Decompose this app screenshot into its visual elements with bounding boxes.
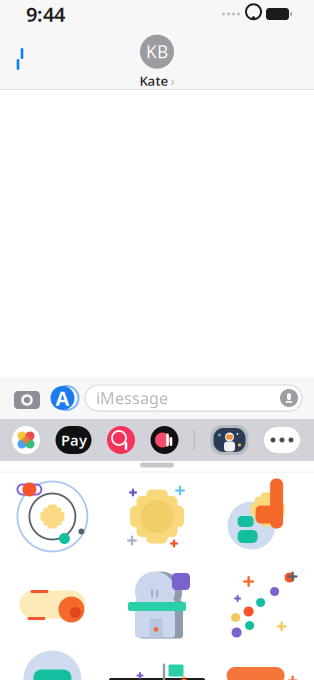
button[interactable]: Constellation sticker bbox=[209, 560, 314, 648]
button[interactable]: Space Stickers bbox=[210, 425, 248, 455]
staticText: 9:44 bbox=[26, 1, 65, 27]
button[interactable]: Flag sticker bbox=[105, 622, 209, 680]
button[interactable]: Earth sticker bbox=[0, 622, 105, 680]
button[interactable]: Dictate bbox=[280, 389, 298, 407]
button[interactable]: Back bbox=[0, 34, 40, 84]
staticText: Kate bbox=[139, 72, 168, 89]
button[interactable]: App Store bbox=[50, 386, 75, 410]
button[interactable]: Meteor sticker bbox=[0, 560, 105, 648]
button[interactable]: Sun sticker bbox=[105, 472, 209, 560]
button[interactable]: Apple Pay bbox=[55, 426, 91, 454]
button[interactable]: Observatory sticker bbox=[105, 560, 209, 648]
button[interactable]: Planet sticker bbox=[209, 622, 314, 680]
staticText: › bbox=[170, 72, 174, 89]
button[interactable]: Music bbox=[150, 426, 178, 454]
staticText: iMessage bbox=[96, 387, 168, 409]
staticText: Pay bbox=[61, 430, 87, 450]
button[interactable]: Photos bbox=[12, 426, 40, 454]
staticText: A bbox=[55, 385, 69, 411]
button[interactable]: More apps bbox=[264, 427, 300, 453]
button[interactable]: Solar system sticker bbox=[0, 472, 105, 560]
button[interactable]: Images bbox=[107, 426, 135, 454]
button[interactable]: Comet and Earth sticker bbox=[209, 472, 314, 560]
button[interactable]: Camera bbox=[14, 387, 40, 409]
button[interactable]: KB bbox=[139, 29, 174, 89]
staticText: KB bbox=[146, 40, 168, 63]
